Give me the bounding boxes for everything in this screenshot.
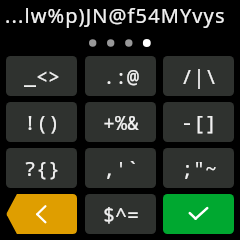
staticText: /|\ <box>181 63 217 90</box>
button[interactable]: ?{} <box>6 148 77 188</box>
staticText: $^= <box>103 201 139 228</box>
staticText: !() <box>24 109 60 136</box>
button[interactable]: Backspace <box>6 194 77 234</box>
button[interactable]: $^= <box>85 194 156 234</box>
button[interactable]: _<> <box>6 56 77 96</box>
button[interactable]: ...lw%p)JN@f54MYvys <box>5 2 226 29</box>
button[interactable]: Enter <box>163 194 234 234</box>
button[interactable]: ,'` <box>85 148 156 188</box>
button[interactable]: +%& <box>85 102 156 142</box>
staticText: _<> <box>24 63 60 90</box>
staticText: .:@ <box>103 63 139 90</box>
staticText: ?{} <box>24 155 60 182</box>
button[interactable]: .:@ <box>85 56 156 96</box>
staticText: ,'` <box>103 155 139 182</box>
staticText: +%& <box>103 109 139 136</box>
button[interactable]: /|\ <box>163 56 234 96</box>
button[interactable]: -[] <box>163 102 234 142</box>
staticText: ;"~ <box>181 155 217 182</box>
button[interactable]: !() <box>6 102 77 142</box>
button[interactable]: ;"~ <box>163 148 234 188</box>
staticText: -[] <box>181 109 217 136</box>
